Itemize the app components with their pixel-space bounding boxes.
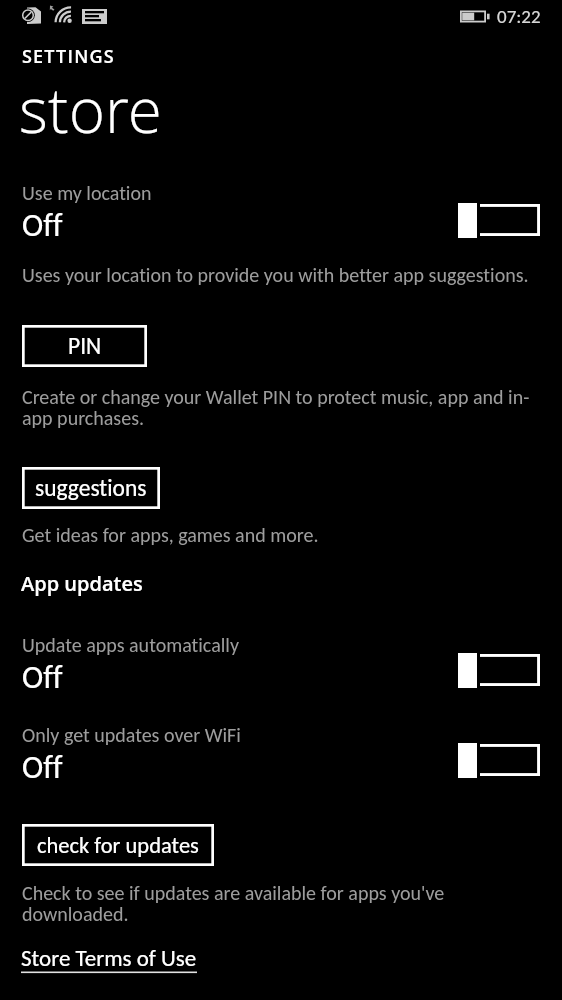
button[interactable]: PIN [22, 325, 147, 367]
button[interactable]: Store Terms of Use [21, 944, 199, 976]
staticText: check for updates [37, 832, 199, 859]
staticText: Off [22, 206, 63, 245]
staticText: Update apps automatically [22, 633, 239, 657]
button[interactable]: Toggle, off [458, 653, 541, 689]
staticText: Create or change your Wallet PIN to prot… [22, 385, 534, 431]
staticText: Get ideas for apps, games and more. [22, 523, 319, 547]
button[interactable]: suggestions [22, 467, 160, 509]
staticText: Check to see if updates are available fo… [22, 881, 492, 927]
staticText: store [19, 67, 162, 151]
button[interactable]: check for updates [22, 824, 214, 866]
staticText: 07:22 [497, 5, 541, 28]
staticText: Uses your location to provide you with b… [22, 263, 529, 287]
staticText: Use my location [22, 181, 152, 205]
staticText: Off [22, 748, 63, 787]
staticText: Off [22, 658, 63, 697]
button[interactable]: Toggle, off [458, 203, 541, 239]
staticText: suggestions [35, 474, 147, 503]
staticText: Only get updates over WiFi [22, 723, 241, 747]
button[interactable]: Toggle, off [458, 743, 541, 779]
staticText: SETTINGS [22, 44, 115, 69]
staticText: PIN [68, 332, 102, 361]
staticText: Store Terms of Use [21, 944, 197, 972]
staticText: App updates [21, 570, 143, 597]
